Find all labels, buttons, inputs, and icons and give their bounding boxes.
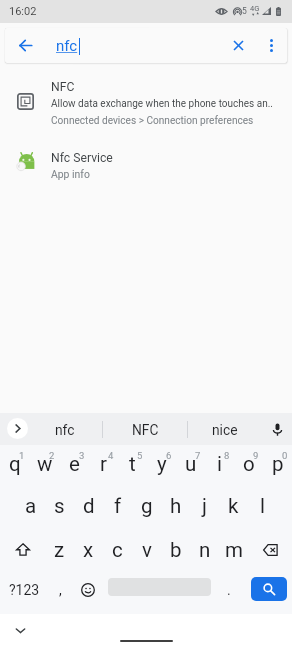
button[interactable]: NFC (0, 72, 292, 130)
staticText: 1 (19, 450, 25, 461)
button[interactable]: d (74, 485, 103, 526)
button[interactable]: a (16, 485, 45, 526)
button[interactable]: p (263, 443, 292, 485)
staticText: f (114, 494, 122, 518)
staticText: y (157, 452, 167, 476)
staticText: e (69, 452, 80, 476)
button[interactable]: y (147, 443, 176, 485)
button[interactable]: q (0, 443, 30, 485)
staticText: b (170, 538, 182, 562)
staticText: NFC (132, 422, 159, 438)
button[interactable]: Emoji (74, 569, 102, 610)
staticText: nfc (55, 422, 75, 438)
staticText: nice (212, 422, 238, 438)
staticText: i (217, 452, 222, 476)
button[interactable]: Backspace (248, 529, 292, 570)
staticText: j (202, 494, 207, 518)
button[interactable]: , (46, 569, 74, 610)
staticText: x (83, 538, 94, 562)
button[interactable]: nfc (36, 413, 94, 446)
staticText: 5 (242, 6, 247, 16)
button[interactable]: l (248, 485, 277, 526)
staticText: s (54, 494, 65, 518)
staticText: 4G (250, 4, 260, 13)
button[interactable]: Nfc Service (0, 146, 292, 190)
staticText: 4 (108, 450, 114, 461)
staticText: App info (51, 168, 90, 180)
staticText: 2 (49, 450, 55, 461)
staticText: h (170, 494, 182, 518)
staticText: r (100, 452, 107, 476)
staticText: t (129, 452, 136, 476)
staticText: g (141, 494, 153, 518)
button[interactable]: More options (256, 28, 286, 63)
button[interactable]: More suggestions (7, 418, 28, 439)
staticText: 9 (253, 450, 259, 461)
staticText: m (225, 538, 243, 562)
button[interactable]: g (132, 485, 161, 526)
button[interactable]: v (132, 529, 161, 570)
button[interactable]: m (219, 529, 248, 570)
staticText: 6 (166, 450, 172, 461)
button[interactable]: ?123 (2, 569, 46, 610)
button[interactable]: k (219, 485, 248, 526)
staticText: 3 (79, 450, 85, 461)
button[interactable]: Hide keyboard (10, 620, 30, 640)
staticText: k (228, 494, 239, 518)
button[interactable]: f (103, 485, 132, 526)
staticText: u (185, 452, 197, 476)
button[interactable]: x (74, 529, 103, 570)
staticText: nfc (56, 37, 78, 55)
button[interactable]: i (205, 443, 234, 485)
staticText: NFC (51, 80, 75, 94)
button[interactable]: Back (8, 28, 43, 63)
staticText: z (54, 538, 65, 562)
staticText: 0 (282, 450, 288, 461)
button[interactable]: s (45, 485, 74, 526)
button[interactable]: nice (196, 413, 254, 446)
button[interactable]: h (161, 485, 190, 526)
staticText: a (25, 494, 37, 518)
button[interactable]: w (30, 443, 60, 485)
staticText: d (83, 494, 95, 518)
button[interactable]: Search (251, 577, 287, 601)
button[interactable]: o (234, 443, 263, 485)
button[interactable]: u (176, 443, 205, 485)
staticText: ?123 (9, 582, 40, 598)
staticText: o (243, 452, 255, 476)
staticText: . (227, 582, 231, 598)
staticText: Nfc Service (51, 151, 113, 165)
button[interactable]: n (190, 529, 219, 570)
staticText: 7 (195, 450, 201, 461)
button[interactable]: NFC (117, 413, 174, 446)
button[interactable]: z (45, 529, 74, 570)
staticText: Connected devices > Connection preferenc… (51, 115, 254, 127)
button[interactable]: e (60, 443, 89, 485)
staticText: n (199, 538, 211, 562)
button[interactable]: Voice input (265, 413, 289, 446)
staticText: Allow data exchange when the phone touch… (51, 98, 273, 110)
staticText: c (112, 538, 123, 562)
staticText: p (272, 452, 284, 476)
staticText: 5 (137, 450, 143, 461)
button[interactable]: b (161, 529, 190, 570)
button[interactable]: . (215, 569, 243, 610)
staticText: w (37, 452, 53, 476)
button[interactable]: j (190, 485, 219, 526)
button[interactable]: Shift (0, 529, 45, 570)
button[interactable]: c (103, 529, 132, 570)
staticText: 16:02 (9, 5, 37, 18)
staticText: q (9, 452, 21, 476)
staticText: , (59, 582, 62, 598)
staticText: l (260, 494, 265, 518)
staticText: 8 (224, 450, 230, 461)
button[interactable]: t (118, 443, 147, 485)
staticText: v (142, 538, 152, 562)
button[interactable]: Clear search (220, 28, 256, 63)
button[interactable]: r (89, 443, 118, 485)
